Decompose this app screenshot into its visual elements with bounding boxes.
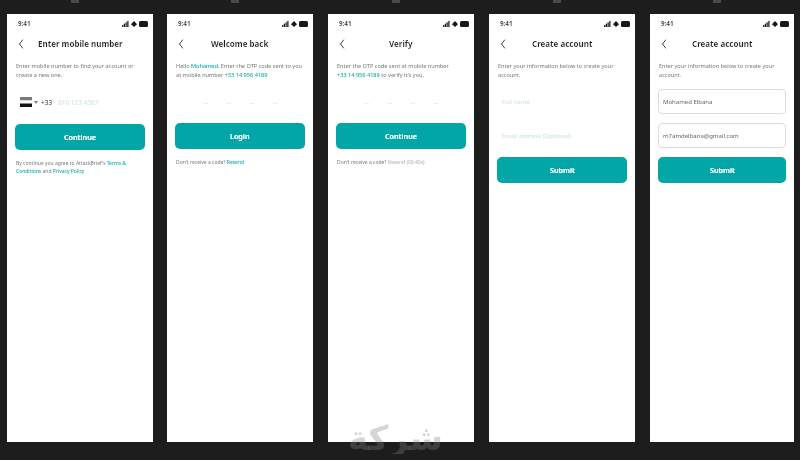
staticText: شركة سلامات <box>348 414 478 454</box>
staticText: Verify <box>389 38 413 49</box>
staticText: Continue <box>64 132 96 142</box>
staticText: +33 <box>41 98 53 107</box>
button[interactable] <box>204 96 208 104</box>
staticText: 9:41 <box>339 19 352 28</box>
button[interactable]: Back <box>335 37 348 50</box>
staticText: 9:41 <box>661 19 674 28</box>
button[interactable] <box>434 96 438 104</box>
button[interactable]: Continue <box>336 123 466 149</box>
staticText: Create account <box>692 38 753 49</box>
button[interactable]: Login <box>175 123 305 149</box>
button[interactable]: Submit <box>658 157 786 183</box>
button[interactable] <box>411 96 415 104</box>
staticText: Enter mobile number to find your account… <box>16 62 144 79</box>
staticText: 610 123 4567 <box>58 98 99 107</box>
button[interactable] <box>250 96 254 104</box>
staticText: Hello Mohamed, Enter the OTP code sent t… <box>176 62 304 79</box>
staticText: Continue <box>385 131 417 141</box>
staticText: Enter your information below to create y… <box>498 62 626 79</box>
button[interactable]: Back <box>174 37 187 50</box>
staticText: 9:41 <box>178 19 191 28</box>
button[interactable]: Back <box>657 37 670 50</box>
button[interactable]: m7amdelbana@gmail.com <box>658 123 786 148</box>
staticText: Login <box>230 131 250 141</box>
button[interactable]: +33 <box>20 96 144 108</box>
button[interactable]: By continue you agree to AttackBrief's T… <box>16 160 144 175</box>
staticText: Enter your information below to create y… <box>659 62 785 79</box>
button[interactable] <box>227 96 231 104</box>
staticText: Enter mobile number <box>38 38 123 49</box>
button[interactable]: Back <box>496 37 509 50</box>
staticText: Full name <box>502 98 530 106</box>
button[interactable]: Email address (Optional) <box>497 123 627 148</box>
button[interactable]: Continue <box>15 124 145 150</box>
button[interactable] <box>388 96 392 104</box>
staticText: Enter the OTP code sent at mobile number… <box>337 62 449 79</box>
button[interactable] <box>273 96 277 104</box>
staticText: Mohamed Elbana <box>663 98 713 106</box>
staticText: Email address (Optional) <box>502 132 571 140</box>
button[interactable]: Full name <box>497 89 627 114</box>
button[interactable]: Don't receive a code? Resend (00:40s) <box>337 159 425 166</box>
staticText: Submit <box>550 165 575 175</box>
button[interactable]: Submit <box>497 157 627 183</box>
staticText: Create account <box>532 38 593 49</box>
button[interactable] <box>365 96 369 104</box>
staticText: Welcome back <box>211 38 269 49</box>
button[interactable]: Mohamed Elbana <box>658 89 786 114</box>
staticText: 9:41 <box>500 19 513 28</box>
button[interactable]: Don't receive a code? Resend <box>176 159 245 166</box>
staticText: m7amdelbana@gmail.com <box>663 132 739 140</box>
staticText: Submit <box>710 165 735 175</box>
staticText: 9:41 <box>18 19 31 28</box>
button[interactable]: Back <box>14 37 27 50</box>
